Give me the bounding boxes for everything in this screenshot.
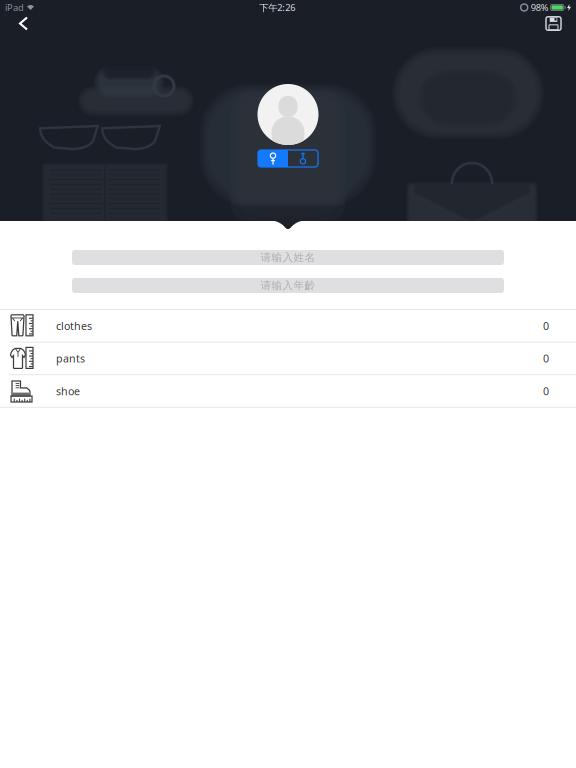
- staticText: clothes: [56, 319, 92, 333]
- staticText: 0: [543, 351, 549, 365]
- staticText: 0: [543, 384, 549, 398]
- button[interactable]: clothes: [0, 310, 576, 342]
- staticText: 请输入姓名: [260, 251, 315, 264]
- button[interactable]: Male: [288, 150, 318, 167]
- staticText: 请输入年齡: [260, 279, 315, 292]
- staticText: 下午2:26: [259, 1, 295, 14]
- staticText: shoe: [56, 384, 80, 398]
- staticText: 98%: [531, 1, 549, 14]
- button[interactable]: pants: [0, 343, 576, 374]
- button[interactable]: Save: [536, 11, 576, 35]
- staticText: iPad: [5, 1, 24, 14]
- button[interactable]: Female: [258, 150, 288, 167]
- button[interactable]: shoe: [0, 375, 576, 407]
- button[interactable]: Back: [0, 11, 41, 35]
- staticText: pants: [56, 351, 85, 365]
- staticText: 0: [543, 319, 549, 333]
- button[interactable]: 请输入年齡: [72, 278, 504, 293]
- button[interactable]: 请输入姓名: [72, 250, 504, 265]
